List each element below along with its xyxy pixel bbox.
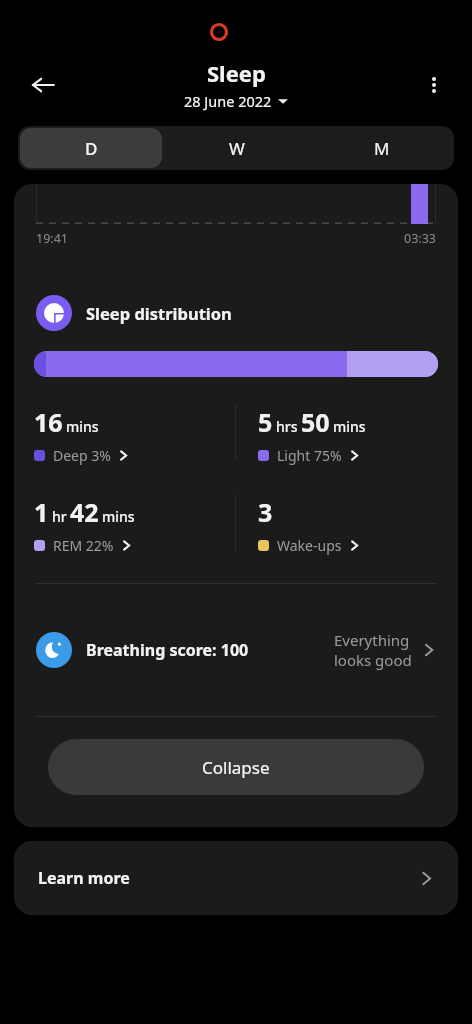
button[interactable]: Back <box>20 62 66 108</box>
button[interactable]: M <box>311 128 452 168</box>
button[interactable]: 5 <box>236 405 438 465</box>
button[interactable]: 3 <box>236 495 438 555</box>
staticText: 16 <box>34 405 63 439</box>
button[interactable]: D <box>20 128 162 168</box>
button[interactable] <box>34 351 438 377</box>
staticText: Wake-ups <box>277 536 342 555</box>
button[interactable]: 16 <box>34 405 235 465</box>
staticText: 50 <box>301 405 330 439</box>
staticText: hrs <box>276 417 298 436</box>
button[interactable]: More options <box>412 63 456 107</box>
staticText: hr <box>52 507 67 526</box>
staticText: M <box>374 137 390 160</box>
staticText: 1 <box>34 495 49 529</box>
staticText: REM 22% <box>53 536 114 555</box>
button[interactable]: Collapse <box>48 739 424 795</box>
staticText: Sleep <box>207 58 266 88</box>
staticText: Light 75% <box>277 446 342 465</box>
staticText: mins <box>333 417 366 436</box>
staticText: Learn more <box>38 867 130 889</box>
staticText: W <box>229 137 245 160</box>
staticText: 03:33 <box>404 230 436 247</box>
staticText: Collapse <box>202 756 270 779</box>
staticText: Sleep distribution <box>86 302 232 324</box>
staticText: D <box>85 137 98 160</box>
staticText: mins <box>102 507 135 526</box>
staticText: Everything looks good <box>334 630 412 670</box>
staticText: 19:41 <box>36 230 68 247</box>
staticText: 3 <box>258 495 273 529</box>
button[interactable]: Breathing score: 100 <box>14 584 458 716</box>
button[interactable]: 1 <box>34 495 235 555</box>
staticText: 28 June 2022 <box>184 91 272 111</box>
staticText: mins <box>66 417 99 436</box>
button[interactable]: W <box>166 128 307 168</box>
button[interactable]: Sleep distribution <box>36 295 436 331</box>
staticText: 42 <box>70 495 99 529</box>
staticText: 5 <box>258 405 273 439</box>
button[interactable]: 28 June 2022 <box>180 90 292 112</box>
staticText: Breathing score: 100 <box>86 639 249 661</box>
staticText: Deep 3% <box>53 446 111 465</box>
button[interactable]: Learn more <box>14 841 458 915</box>
